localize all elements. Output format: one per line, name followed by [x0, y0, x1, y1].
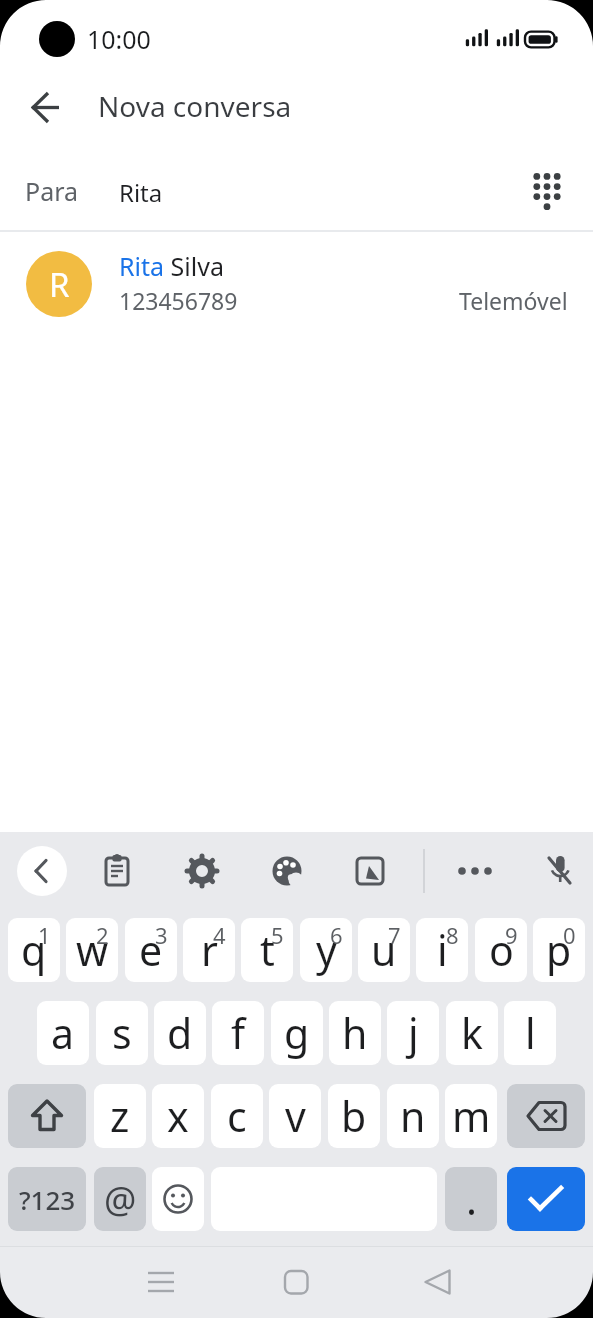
staticText: d [167, 1005, 193, 1061]
button[interactable]: @ [94, 1167, 146, 1231]
staticText: Rita [119, 176, 163, 209]
button[interactable] [532, 843, 588, 899]
button[interactable]: n [387, 1084, 439, 1148]
staticText: e [139, 922, 163, 978]
staticText: b [341, 1088, 367, 1144]
staticText: k [461, 1005, 483, 1061]
staticText: 7 [388, 920, 401, 950]
button[interactable] [517, 161, 577, 221]
button[interactable]: . [445, 1167, 497, 1231]
staticText: n [400, 1088, 426, 1144]
staticText: h [342, 1005, 368, 1061]
button[interactable]: b [328, 1084, 380, 1148]
staticText: q [21, 922, 47, 978]
staticText: t [260, 922, 275, 978]
staticText: f [231, 1005, 246, 1061]
button[interactable] [89, 843, 145, 899]
staticText: Rita Silva [119, 249, 224, 283]
button[interactable]: l [504, 1001, 556, 1065]
button[interactable] [259, 843, 315, 899]
staticText: w [76, 922, 109, 978]
button[interactable] [507, 1167, 585, 1231]
button[interactable] [22, 87, 70, 127]
button[interactable] [533, 918, 585, 982]
button[interactable] [447, 843, 503, 899]
button[interactable]: g [271, 1001, 323, 1065]
staticText: R [49, 262, 70, 307]
button[interactable] [358, 918, 410, 982]
button[interactable]: k [446, 1001, 498, 1065]
staticText: i [437, 922, 448, 978]
button[interactable]: m [445, 1084, 497, 1148]
button[interactable] [8, 1084, 86, 1148]
button[interactable]: ?123 [8, 1167, 86, 1231]
button[interactable]: j [387, 1001, 439, 1065]
button[interactable] [14, 843, 70, 899]
button[interactable] [174, 843, 230, 899]
staticText: y [316, 922, 337, 978]
staticText: Telemóvel [459, 285, 568, 316]
staticText: u [371, 922, 397, 978]
staticText: r [201, 922, 218, 978]
staticText: 5 [271, 920, 284, 950]
button[interactable]: c [211, 1084, 263, 1148]
staticText: p [546, 922, 572, 978]
button[interactable] [152, 1167, 204, 1231]
staticText: 0 [563, 920, 576, 950]
button[interactable] [183, 918, 235, 982]
staticText: v [285, 1088, 306, 1144]
staticText: c [227, 1088, 247, 1144]
staticText: 9 [505, 920, 518, 950]
staticText: 10:00 [87, 22, 151, 54]
button[interactable]: x [152, 1084, 204, 1148]
button[interactable] [300, 918, 352, 982]
staticText: j [408, 1005, 419, 1061]
button[interactable]: h [329, 1001, 381, 1065]
staticText: g [284, 1005, 310, 1061]
button[interactable]: R [0, 232, 593, 336]
staticText: 123456789 [119, 285, 238, 316]
staticText: 4 [213, 920, 226, 950]
staticText: l [525, 1005, 536, 1061]
staticText: s [112, 1005, 132, 1061]
staticText: 1 [38, 920, 51, 950]
staticText: 8 [446, 920, 459, 950]
button[interactable] [131, 1252, 191, 1312]
button[interactable] [342, 843, 398, 899]
button[interactable] [507, 1084, 585, 1148]
button[interactable] [266, 1252, 326, 1312]
button[interactable] [66, 918, 118, 982]
staticText: Nova conversa [98, 87, 292, 125]
button[interactable] [8, 918, 60, 982]
button[interactable]: v [269, 1084, 321, 1148]
staticText: a [51, 1005, 75, 1061]
staticText: 2 [96, 920, 109, 950]
button[interactable]: s [96, 1001, 148, 1065]
staticText: ?123 [19, 1182, 76, 1217]
button[interactable]: d [154, 1001, 206, 1065]
staticText: o [489, 922, 514, 978]
staticText: m [452, 1088, 491, 1144]
staticText: x [167, 1088, 189, 1144]
button[interactable] [475, 918, 527, 982]
button[interactable]: a [37, 1001, 89, 1065]
staticText: z [110, 1088, 130, 1144]
staticText: . [466, 1171, 477, 1227]
button[interactable] [125, 918, 177, 982]
staticText: Para [25, 174, 79, 208]
button[interactable] [241, 918, 293, 982]
staticText: @ [104, 1175, 137, 1224]
button[interactable]: z [94, 1084, 146, 1148]
staticText: 6 [330, 920, 343, 950]
button[interactable] [407, 1252, 467, 1312]
staticText: 3 [155, 920, 168, 950]
button[interactable] [416, 918, 468, 982]
button[interactable]: f [212, 1001, 264, 1065]
